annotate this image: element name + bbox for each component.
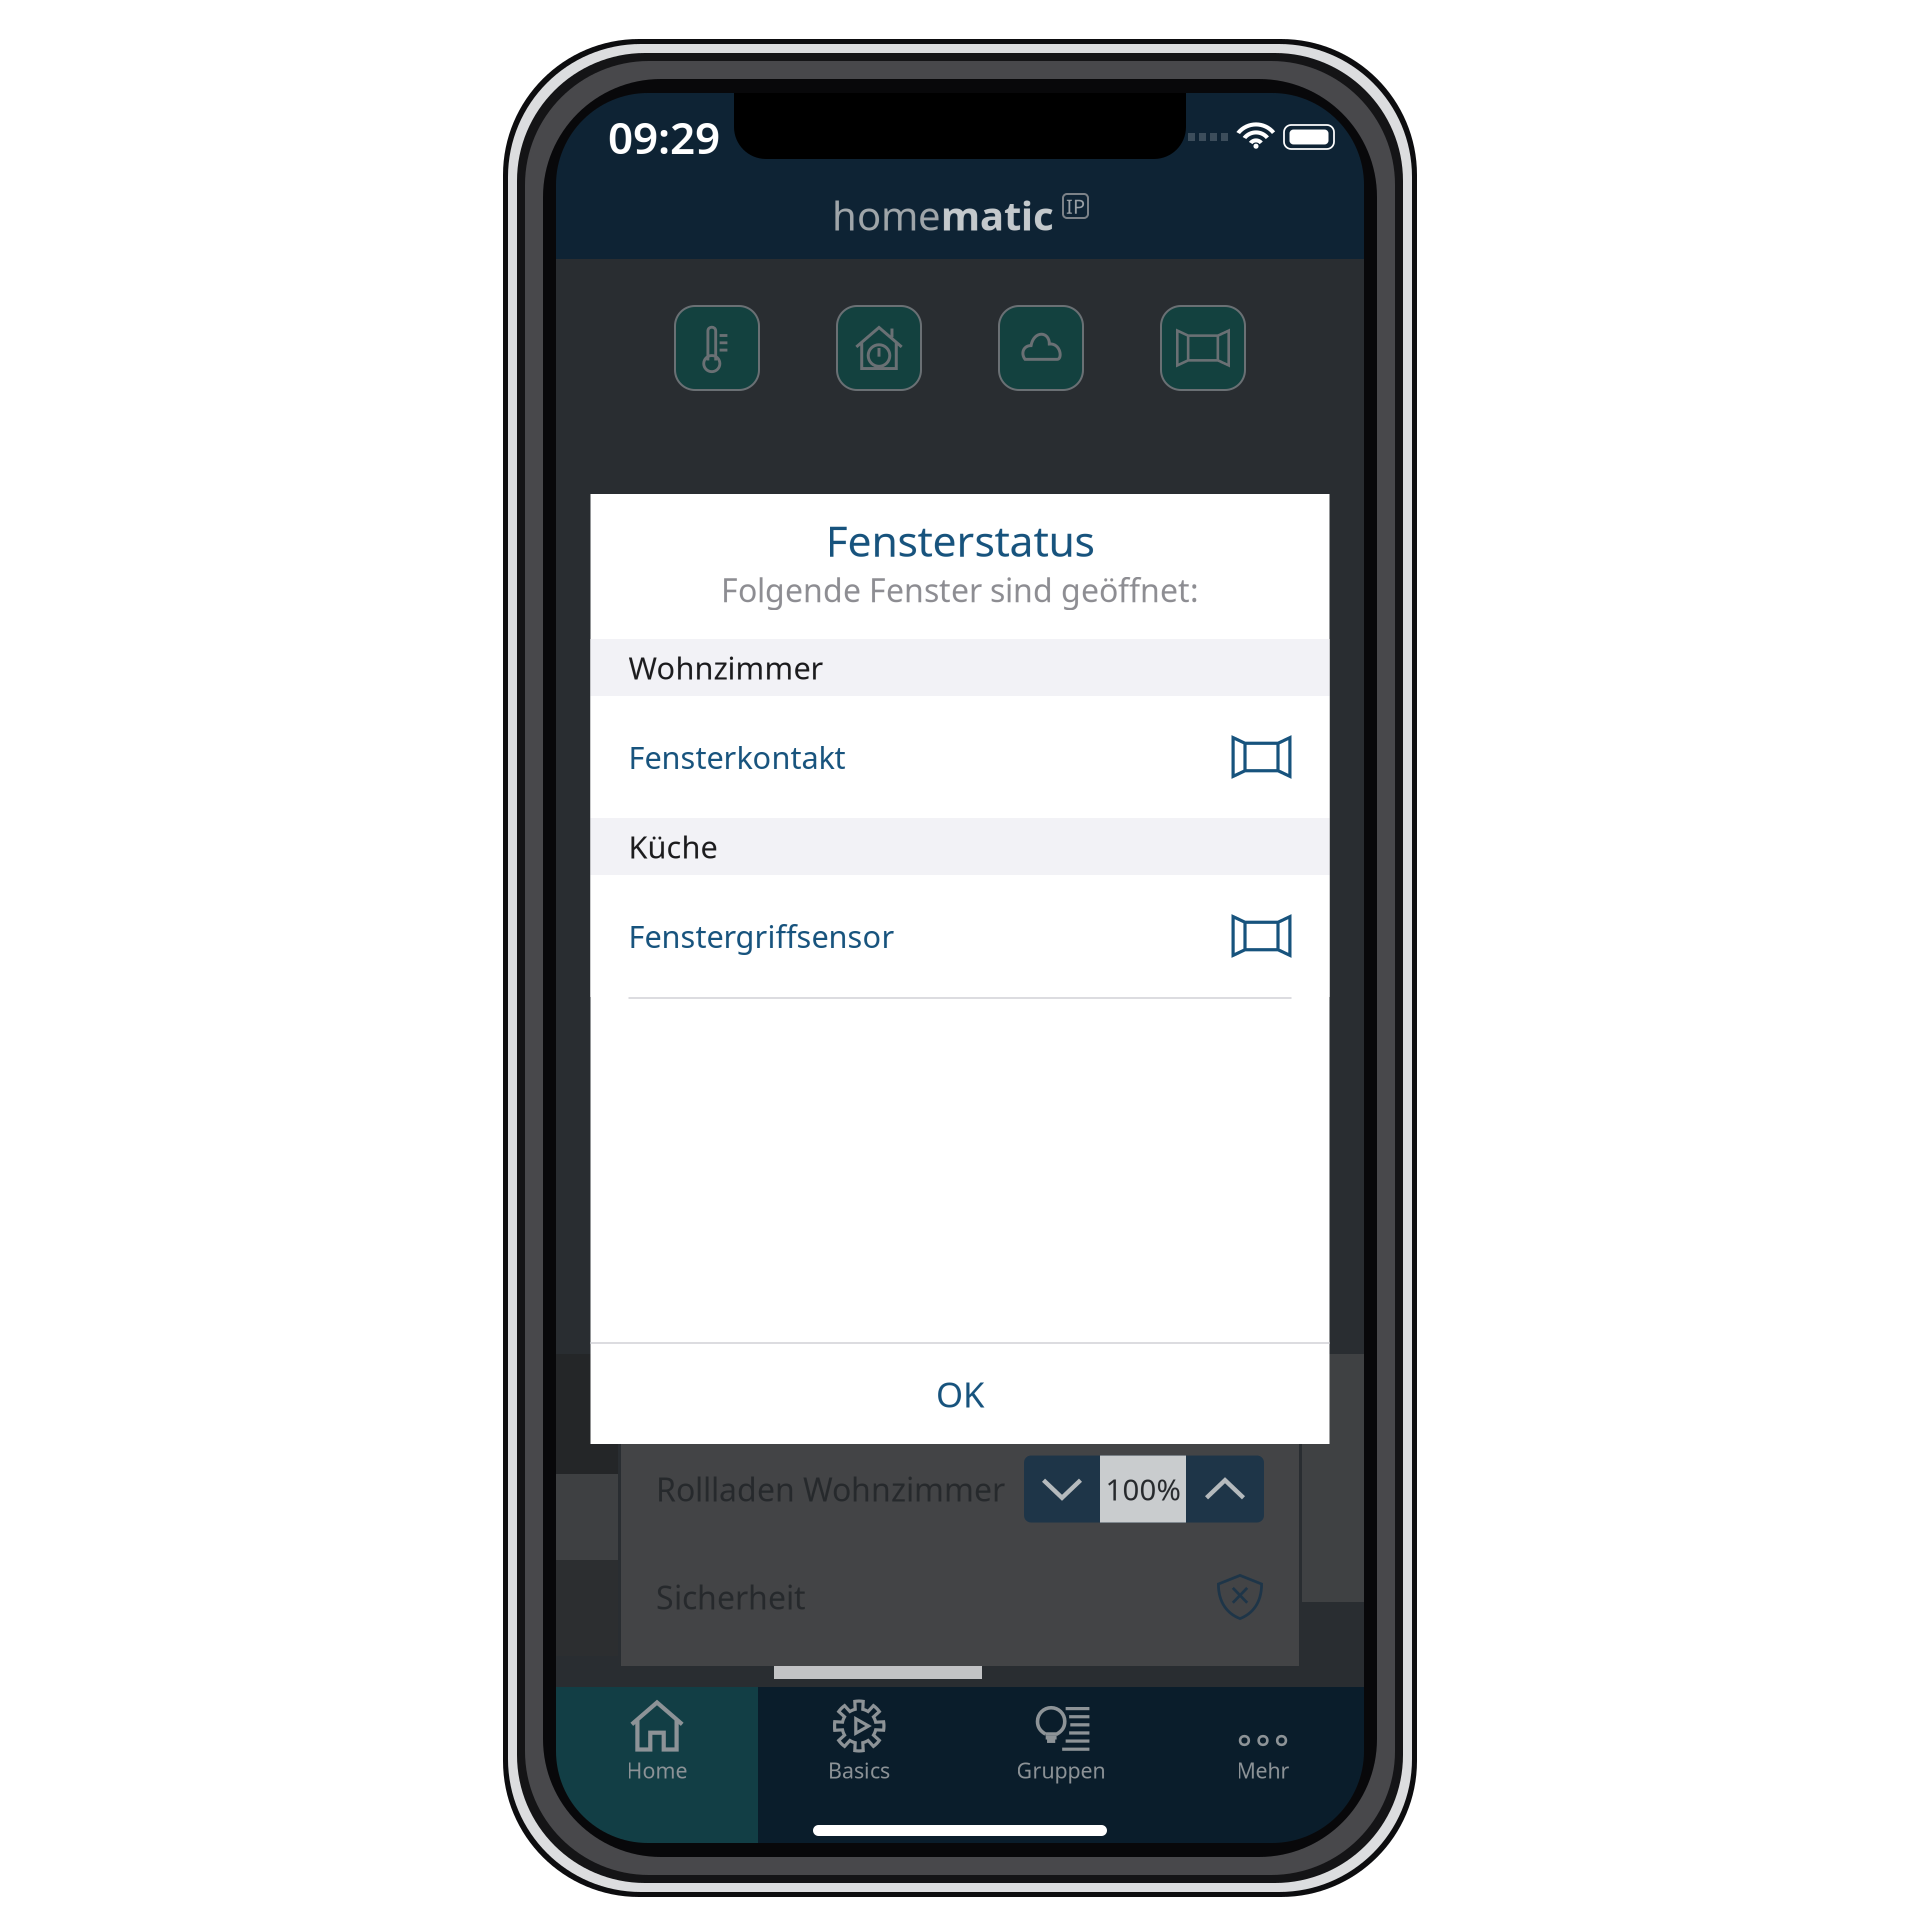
staticText: Wohnzimmer bbox=[628, 647, 823, 688]
staticText: Sicherheit bbox=[656, 1576, 806, 1618]
staticText: Mehr bbox=[1236, 1756, 1289, 1784]
button[interactable]: Rollladen schließen bbox=[1024, 1455, 1100, 1522]
button[interactable]: Wetter bbox=[999, 306, 1083, 390]
staticText: home bbox=[832, 188, 941, 241]
button[interactable]: Basics bbox=[758, 1687, 960, 1843]
staticText: Küche bbox=[628, 826, 717, 867]
button[interactable]: Rollladen öffnen bbox=[1186, 1455, 1264, 1522]
button[interactable]: Fensterstatus bbox=[1161, 306, 1245, 390]
staticText: OK bbox=[936, 1371, 984, 1417]
staticText: Rollladen Wohnzimmer bbox=[656, 1468, 1005, 1510]
button[interactable]: OK bbox=[590, 1344, 1329, 1444]
staticText: IP bbox=[1066, 193, 1085, 219]
staticText: Gruppen bbox=[1016, 1756, 1105, 1784]
staticText: Home bbox=[626, 1756, 687, 1784]
button[interactable]: Sicherheit deaktiviert bbox=[1216, 1573, 1264, 1621]
staticText: Fenstergriffsensor bbox=[628, 916, 894, 956]
button[interactable]: Fensterkontakt bbox=[590, 696, 1329, 818]
staticText: Folgende Fenster sind geöffnet: bbox=[721, 568, 1199, 611]
button[interactable]: Gruppen bbox=[960, 1687, 1162, 1843]
staticText: Fensterkontakt bbox=[628, 737, 845, 777]
button[interactable]: Fenstergriffsensor bbox=[590, 875, 1329, 997]
staticText: Basics bbox=[828, 1756, 890, 1784]
button[interactable]: Home bbox=[556, 1687, 758, 1843]
staticText: 09:29 bbox=[608, 108, 720, 166]
button[interactable]: Anwesenheit bbox=[837, 306, 921, 390]
button[interactable]: Mehr bbox=[1162, 1687, 1364, 1843]
staticText: matic bbox=[941, 188, 1054, 241]
button[interactable]: Klima bbox=[675, 306, 759, 390]
staticText: Fensterstatus bbox=[825, 512, 1094, 568]
staticText: 100% bbox=[1105, 1469, 1180, 1508]
